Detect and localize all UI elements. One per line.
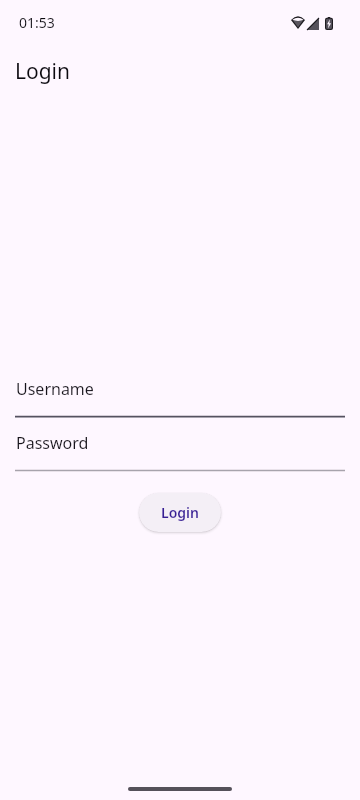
button[interactable]: Login <box>139 493 221 532</box>
button[interactable]: Password text field <box>15 432 345 473</box>
staticText: 01:53 <box>19 13 55 32</box>
staticText: Login <box>161 503 199 522</box>
other: Wifi <box>291 16 305 29</box>
other: Cellular signal <box>307 18 319 30</box>
staticText: Password <box>16 432 89 454</box>
other: Battery <box>325 17 333 30</box>
staticText: Login <box>15 57 71 86</box>
staticText: Username <box>16 378 94 400</box>
button[interactable]: Username text field <box>15 378 345 419</box>
